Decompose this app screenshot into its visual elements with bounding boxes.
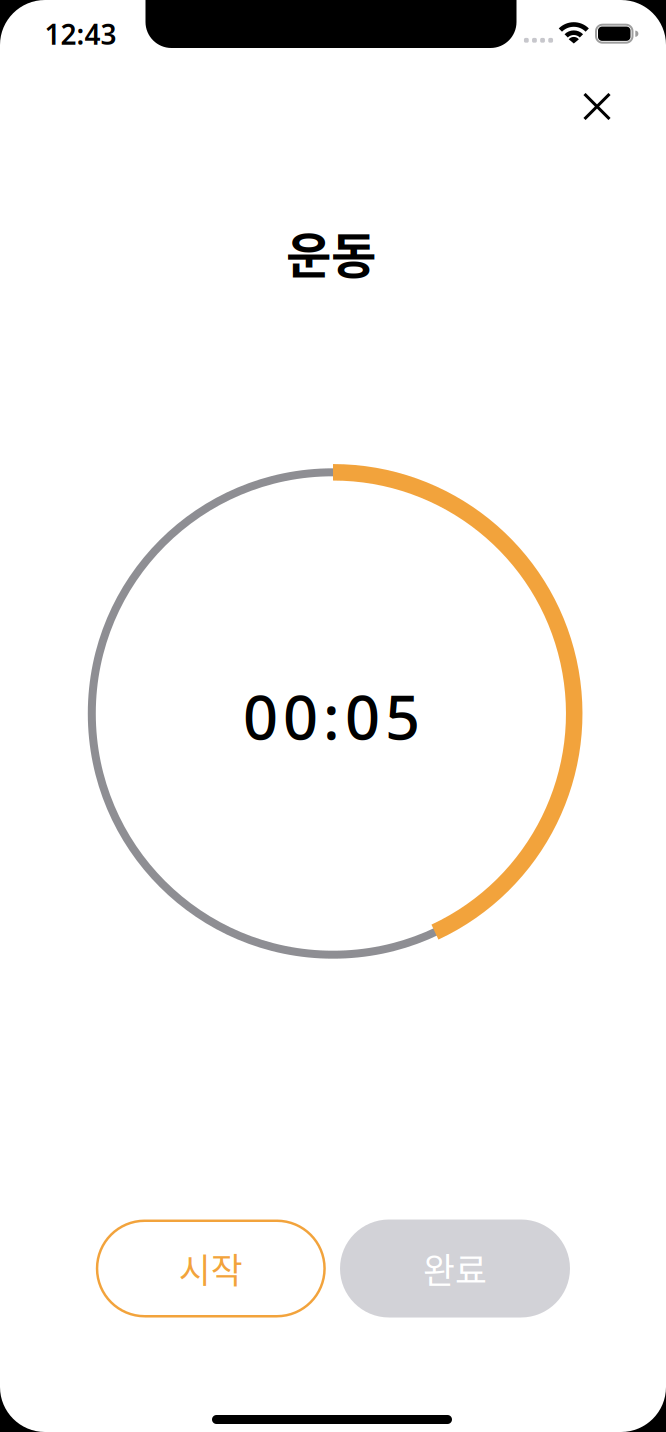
staticText: 완료 — [423, 1243, 487, 1294]
staticText: 운동 — [286, 216, 376, 288]
staticText: 00:05 — [243, 675, 420, 757]
staticText: 시작 — [179, 1243, 243, 1294]
button[interactable]: 시작 — [96, 1219, 326, 1317]
staticText: 12:43 — [44, 15, 116, 53]
button[interactable]: Close — [575, 84, 619, 128]
button[interactable]: 완료 — [340, 1219, 570, 1317]
